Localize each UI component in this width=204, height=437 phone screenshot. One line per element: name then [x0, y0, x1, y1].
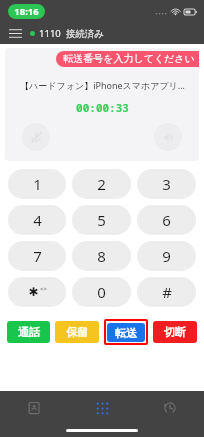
staticText: 転送	[115, 326, 137, 340]
staticText: 【ハードフォン】iPhoneスマホアプリ…	[20, 79, 185, 91]
staticText: 切断	[164, 325, 186, 339]
button[interactable]: Dialpad	[68, 391, 136, 425]
staticText: 5	[97, 210, 106, 230]
button[interactable]: Contacts	[0, 391, 68, 425]
staticText: 6	[162, 210, 171, 230]
button[interactable]: 2	[72, 169, 131, 199]
staticText: 2	[97, 174, 106, 194]
button[interactable]: 1	[8, 169, 66, 199]
staticText: 4	[33, 210, 42, 230]
button[interactable]: 3	[137, 169, 196, 199]
button[interactable]: 転送	[107, 323, 145, 342]
button[interactable]: History	[136, 391, 204, 425]
staticText: <>	[40, 285, 47, 293]
staticText: 7	[33, 246, 42, 266]
button[interactable]: 8	[72, 241, 131, 271]
button[interactable]: ✱	[8, 277, 66, 307]
button[interactable]: 切断	[153, 321, 197, 343]
button[interactable]: #	[137, 277, 196, 307]
button[interactable]: 9	[137, 241, 196, 271]
staticText: 18:16	[14, 5, 39, 18]
button[interactable]: 5	[72, 205, 131, 235]
staticText: 保留	[66, 325, 88, 339]
button[interactable]: 0	[72, 277, 131, 307]
button[interactable]: 保留	[55, 321, 99, 343]
button[interactable]: 通話	[7, 321, 50, 343]
staticText: 00:00:33	[76, 100, 129, 115]
staticText: ✱	[28, 285, 39, 299]
staticText: 転送番号を入力してください	[63, 52, 195, 65]
staticText: 1110 接続済み	[39, 27, 104, 40]
staticText: 9	[162, 246, 171, 266]
staticText: 0	[97, 282, 106, 302]
staticText: 通話	[18, 325, 40, 339]
staticText: 8	[97, 246, 106, 266]
button[interactable]: Menu	[0, 22, 30, 44]
button[interactable]: Mute	[22, 123, 50, 151]
button[interactable]: 6	[137, 205, 196, 235]
staticText: #	[162, 282, 172, 302]
button[interactable]: Speaker	[154, 123, 182, 151]
staticText: 1	[33, 174, 42, 194]
button[interactable]: 4	[8, 205, 66, 235]
staticText: 3	[162, 174, 171, 194]
button[interactable]: 7	[8, 241, 66, 271]
